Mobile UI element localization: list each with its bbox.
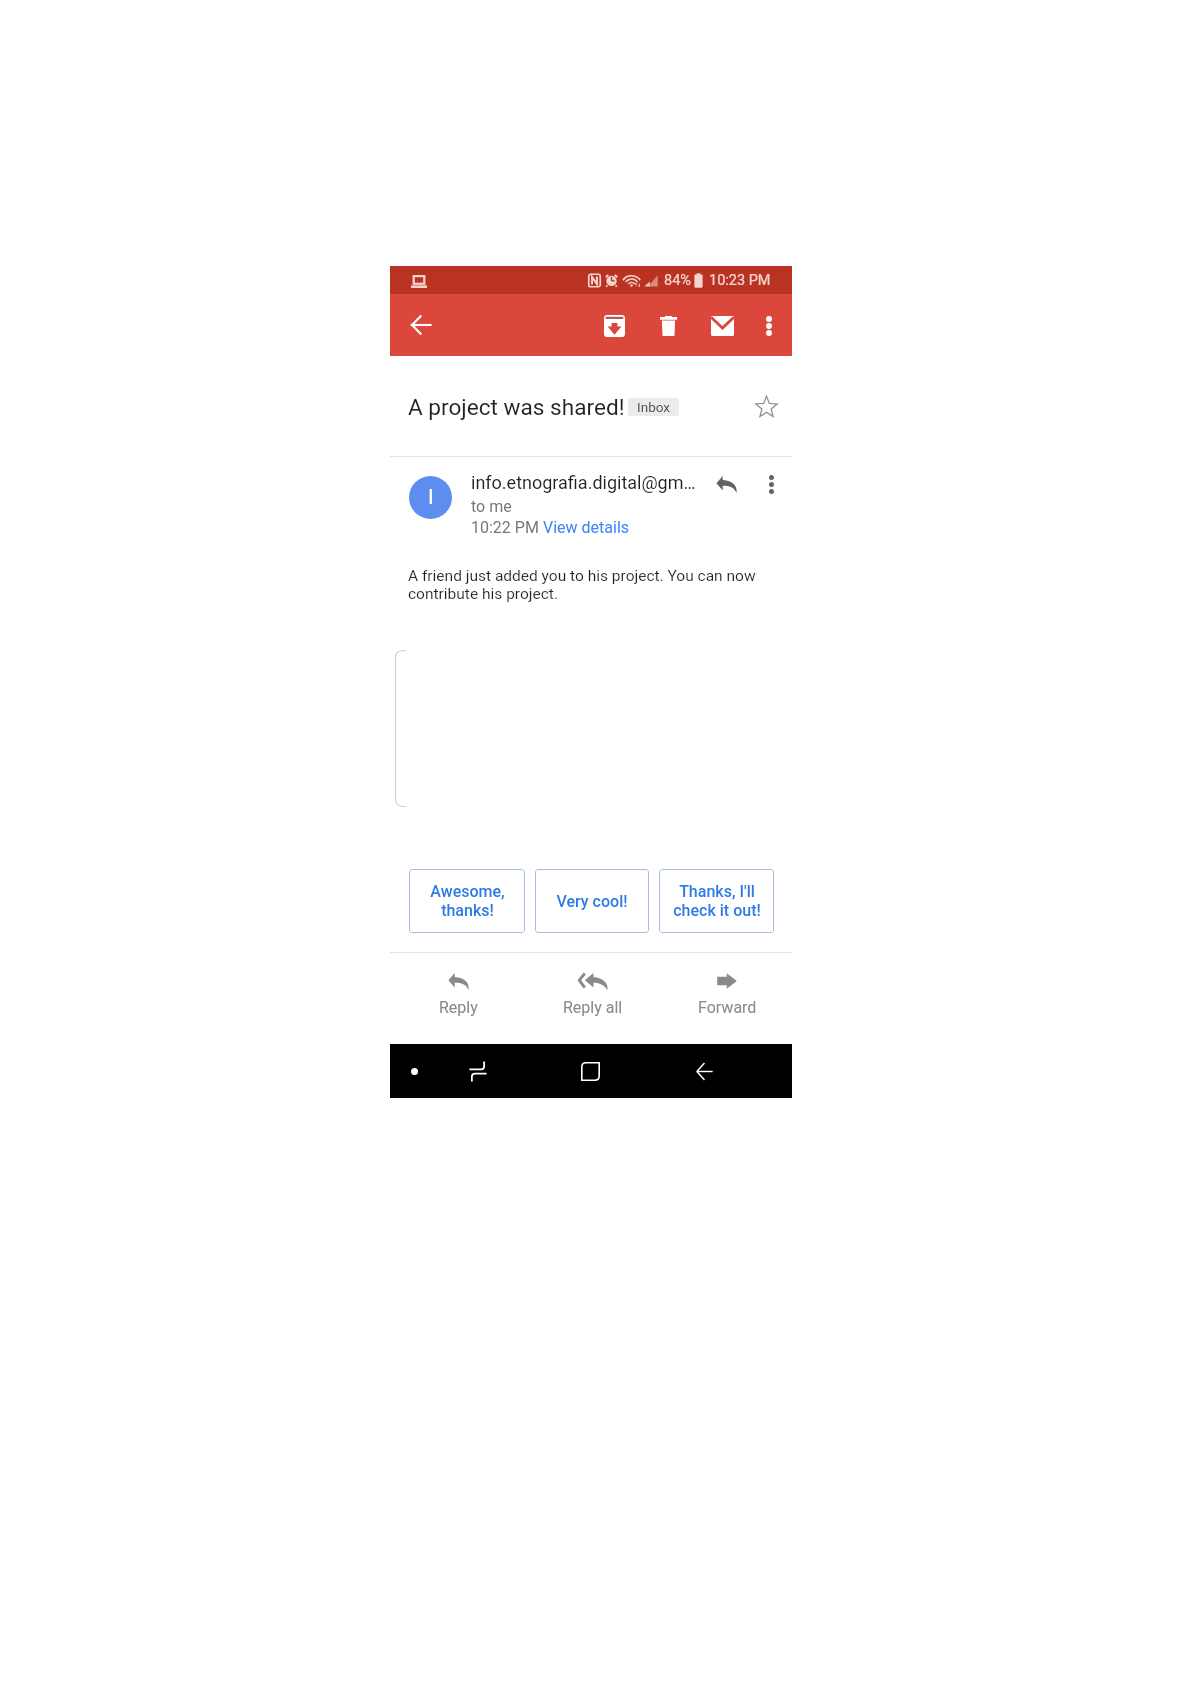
staticText: info.etnografia.digital@gm… <box>471 472 696 493</box>
button[interactable]: Very cool! <box>535 869 649 933</box>
button[interactable]: Recent apps <box>456 1049 500 1093</box>
button[interactable]: More options <box>748 305 790 347</box>
button[interactable]: Archive <box>593 305 635 347</box>
staticText: Reply <box>439 998 478 1017</box>
button[interactable]: View details <box>543 518 630 537</box>
staticText: Very cool! <box>556 892 628 911</box>
button[interactable]: Star <box>746 386 786 426</box>
button[interactable]: Notifications <box>392 1049 436 1093</box>
staticText: 84% <box>664 272 691 289</box>
button[interactable]: Contact photo <box>409 476 452 519</box>
button[interactable]: Back <box>682 1049 726 1093</box>
staticText: Reply all <box>563 998 623 1017</box>
button[interactable]: Reply all <box>533 970 653 1032</box>
staticText: I <box>428 485 434 510</box>
button[interactable]: Mark as unread <box>701 305 743 347</box>
button[interactable]: Inbox <box>628 398 679 416</box>
button[interactable]: More options <box>751 464 791 504</box>
staticText: Thanks, I'll check it out! <box>673 882 761 920</box>
button[interactable]: Delete <box>647 305 689 347</box>
staticText: View details <box>543 518 630 537</box>
button[interactable]: Home <box>568 1049 612 1093</box>
button[interactable]: Reply <box>398 970 518 1032</box>
button[interactable]: Forward <box>667 970 787 1032</box>
staticText: Awesome, thanks! <box>430 882 505 920</box>
button[interactable]: Reply <box>706 464 746 504</box>
staticText: 10:23 PM <box>709 272 771 289</box>
staticText: to me <box>471 497 512 516</box>
staticText: 10:22 PM <box>471 518 543 537</box>
staticText: Inbox <box>637 399 670 415</box>
staticText: A project was shared! <box>408 394 625 420</box>
button[interactable]: Navigate up <box>399 303 443 347</box>
staticText: Forward <box>698 998 757 1017</box>
button[interactable]: Awesome, thanks! <box>409 869 525 933</box>
staticText: A friend just added you to his project. … <box>408 567 774 603</box>
button[interactable]: Thanks, I'll check it out! <box>659 869 774 933</box>
